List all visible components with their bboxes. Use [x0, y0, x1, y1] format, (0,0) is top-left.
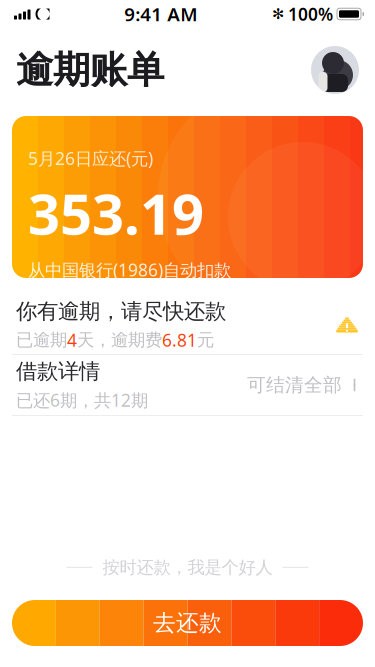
- staticText: 从中国银行(1986)自动扣款: [28, 258, 231, 281]
- staticText: 4: [67, 329, 77, 352]
- button[interactable]: 你有逾期，请尽快还款: [0, 296, 375, 354]
- staticText: 天，逾期费: [77, 329, 162, 351]
- button[interactable]: 去还款: [12, 600, 363, 646]
- staticText: 9:41 AM: [124, 2, 197, 26]
- staticText: 元: [197, 329, 214, 351]
- staticText: 已逾期: [16, 329, 67, 351]
- staticText: 逾期账单: [16, 47, 164, 93]
- staticText: 6.81: [162, 329, 197, 352]
- staticText: 可结清全部: [247, 373, 342, 396]
- staticText: 5月26日应还(元): [28, 147, 153, 170]
- staticText: 100%: [288, 2, 333, 25]
- staticText: ✻: [272, 6, 284, 22]
- button[interactable]: 借款详情: [0, 355, 375, 415]
- staticText: 借款详情: [16, 358, 100, 385]
- staticText: 353.19: [28, 176, 204, 250]
- button[interactable]: Profile: [311, 46, 359, 94]
- staticText: 按时还款，我是个好人: [102, 557, 272, 578]
- staticText: 已还6期，共12期: [16, 389, 148, 412]
- staticText: 你有逾期，请尽快还款: [16, 298, 226, 325]
- staticText: 去还款: [153, 609, 222, 637]
